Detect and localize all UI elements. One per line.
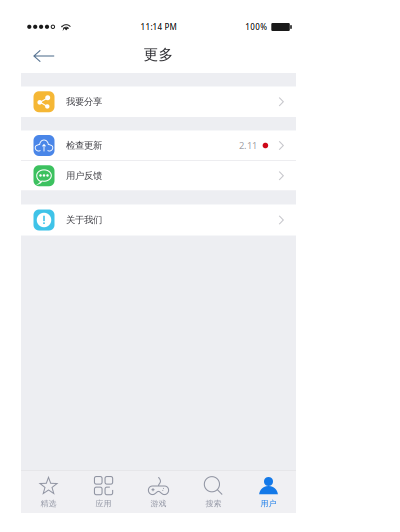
- button[interactable]: 用户反馈: [21, 161, 296, 190]
- button[interactable]: 应用: [76, 471, 131, 513]
- staticText: 2.11: [239, 139, 257, 152]
- button[interactable]: 检查更新: [21, 130, 296, 160]
- staticText: 用户反馈: [66, 170, 102, 181]
- staticText: 100%: [245, 22, 267, 32]
- staticText: 检查更新: [66, 140, 102, 151]
- staticText: 关于我们: [66, 214, 102, 226]
- button[interactable]: 我要分享: [21, 86, 296, 117]
- button[interactable]: 游戏: [131, 471, 186, 513]
- staticText: 精选: [40, 499, 56, 508]
- staticText: 游戏: [150, 499, 166, 508]
- staticText: 11:14 PM: [140, 22, 176, 32]
- staticText: 应用: [95, 499, 111, 508]
- button[interactable]: Back: [25, 39, 63, 73]
- button[interactable]: 搜索: [186, 471, 241, 513]
- staticText: 更多: [143, 45, 173, 63]
- button[interactable]: 关于我们: [21, 204, 296, 235]
- staticText: 我要分享: [66, 96, 102, 107]
- button[interactable]: 用户: [241, 471, 296, 513]
- staticText: 搜索: [205, 499, 221, 508]
- staticText: 用户: [260, 499, 276, 508]
- button[interactable]: 精选: [21, 471, 76, 513]
